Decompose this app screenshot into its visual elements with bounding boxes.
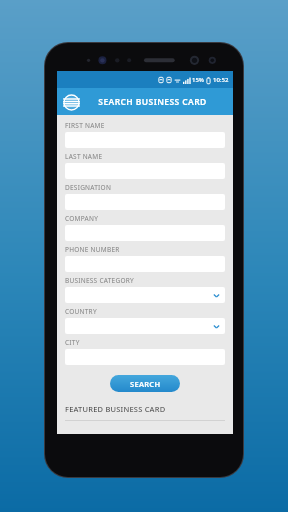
staticText: SEARCH BUSINESS CARD: [98, 96, 207, 108]
button[interactable]: SEARCH: [110, 375, 180, 392]
staticText: SEARCH: [130, 379, 161, 389]
button[interactable]: Open navigation menu: [61, 92, 81, 112]
staticText: CITY: [65, 338, 80, 347]
staticText: BUSINESS CATEGORY: [65, 276, 134, 285]
staticText: COMPANY: [65, 214, 99, 223]
staticText: FEATURED BUSINESS CARD: [65, 404, 166, 414]
staticText: 15%: [192, 76, 204, 84]
staticText: COUNTRY: [65, 307, 97, 316]
staticText: FIRST NAME: [65, 121, 105, 130]
staticText: DESIGNATION: [65, 183, 112, 192]
staticText: LAST NAME: [65, 152, 103, 161]
button[interactable]: BUSINESS CATEGORY: [65, 287, 225, 303]
button[interactable]: COUNTRY: [65, 318, 225, 334]
staticText: 10:52: [213, 76, 229, 84]
staticText: PHONE NUMBER: [65, 245, 120, 254]
